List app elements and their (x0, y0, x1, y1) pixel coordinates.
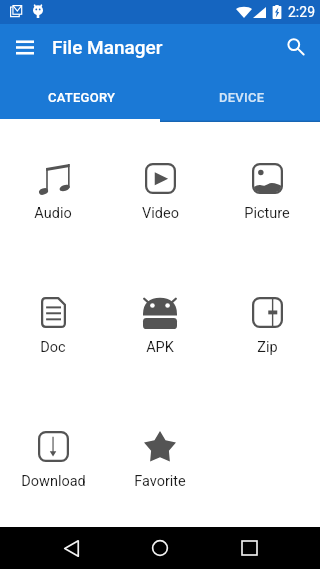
button[interactable]: Audio (6, 155, 100, 225)
staticText: Audio (34, 205, 72, 222)
staticText: File Manager (52, 36, 163, 58)
button[interactable]: Back (50, 527, 93, 569)
button[interactable]: Doc (6, 289, 100, 359)
staticText: APK (146, 339, 174, 356)
button[interactable]: Download (6, 423, 100, 493)
button[interactable]: Search (277, 28, 314, 65)
button[interactable]: Favorite (113, 423, 207, 493)
button[interactable]: DEVICE (160, 72, 320, 122)
staticText: Doc (40, 339, 66, 356)
staticText: DEVICE (219, 90, 265, 105)
staticText: Picture (244, 205, 290, 222)
staticText: 2:29 (288, 4, 315, 20)
button[interactable]: Picture (220, 155, 314, 225)
button[interactable]: Recent apps (228, 527, 270, 569)
staticText: Zip (257, 339, 278, 356)
staticText: CATEGORY (48, 90, 116, 105)
button[interactable]: Zip (220, 289, 314, 359)
button[interactable]: CATEGORY (0, 72, 160, 122)
button[interactable]: Open navigation drawer (7, 29, 42, 64)
button[interactable]: APK (113, 289, 207, 359)
button[interactable]: Video (113, 155, 207, 225)
staticText: Favorite (134, 473, 186, 490)
staticText: Download (21, 473, 86, 490)
staticText: Video (142, 205, 179, 222)
button[interactable]: Home (139, 527, 181, 569)
